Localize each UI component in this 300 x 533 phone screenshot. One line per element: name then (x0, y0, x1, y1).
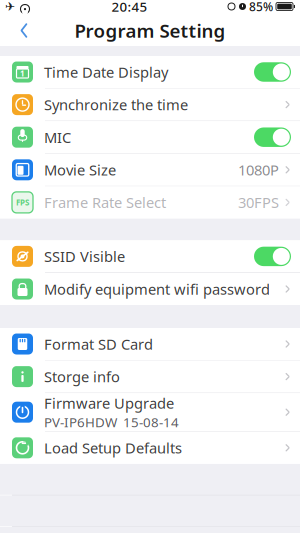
button[interactable]: Format SD Card (0, 328, 300, 360)
button[interactable]: FPS (0, 186, 300, 218)
staticText: Storge info (44, 367, 120, 386)
button[interactable]: Movie Size (0, 154, 300, 186)
staticText: PV-IP6HDW 15-08-14 (44, 413, 179, 431)
staticText: Movie Size (44, 160, 116, 180)
staticText: 30FPS (238, 193, 279, 212)
button[interactable]: 1 (0, 56, 300, 88)
staticText: Synchronize the time (44, 95, 188, 114)
staticText: Frame Rate Select (44, 193, 166, 212)
button[interactable]: Synchronize the time (0, 89, 300, 121)
button[interactable]: SSID Visible (0, 240, 300, 272)
staticText: 1080P (238, 160, 279, 180)
staticText: Format SD Card (44, 334, 153, 354)
staticText: 20:45 (111, 0, 147, 15)
staticText: SSID Visible (44, 247, 125, 266)
staticText: 1 (20, 68, 25, 79)
staticText: 85% (249, 0, 273, 14)
staticText: Time Date Display (44, 62, 168, 82)
staticText: MIC (44, 127, 71, 147)
button[interactable]: Load Setup Defaults (0, 432, 300, 464)
staticText: FPS (16, 197, 29, 208)
button[interactable]: Firmware Upgrade (0, 393, 300, 431)
button[interactable]: Back (9, 15, 39, 45)
staticText: Firmware Upgrade (44, 393, 174, 413)
button[interactable]: Modify equipment wifi password (0, 273, 300, 305)
staticText: Modify equipment wifi password (44, 279, 270, 299)
button[interactable]: MIC (0, 121, 300, 153)
button[interactable]: Storge info (0, 361, 300, 393)
staticText: Load Setup Defaults (44, 438, 182, 458)
staticText: ✈ (5, 0, 15, 13)
staticText: Program Setting (74, 18, 225, 43)
